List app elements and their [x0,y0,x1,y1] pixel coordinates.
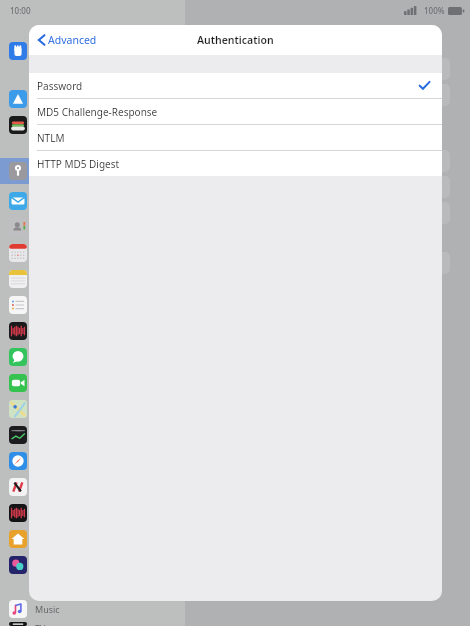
button[interactable] [0,240,185,266]
button[interactable] [205,58,450,80]
button[interactable] [0,266,185,292]
button[interactable] [0,214,185,240]
button[interactable] [0,526,185,552]
button[interactable] [0,396,185,422]
other: Selected [419,81,430,90]
button[interactable] [0,86,185,112]
button[interactable] [0,344,185,370]
staticText: NTLM [37,131,65,145]
button[interactable] [0,38,185,64]
button[interactable]: TV [0,622,185,626]
button[interactable] [0,448,185,474]
button[interactable] [0,158,185,184]
button[interactable] [205,176,450,198]
button[interactable]: HTTP MD5 Digest [29,151,442,176]
staticText: Advanced [48,33,97,47]
button[interactable] [0,422,185,448]
staticText: Music [35,603,60,615]
staticText: HTTP MD5 Digest [37,157,120,171]
button[interactable] [205,84,450,106]
button[interactable]: MD5 Challenge-Response [29,99,442,125]
button[interactable] [0,474,185,500]
staticText: Password [37,79,83,93]
button[interactable]: Music [0,596,185,622]
button[interactable]: Password [29,73,442,99]
button[interactable] [0,500,185,526]
staticText: TV [35,622,46,626]
button[interactable] [0,552,185,578]
button[interactable] [205,252,450,274]
staticText: Authentication [197,33,274,47]
staticText: MD5 Challenge-Response [37,105,158,119]
button[interactable] [0,112,185,138]
button[interactable] [0,292,185,318]
staticText: 10:00 [10,5,31,16]
button[interactable] [0,370,185,396]
button[interactable] [0,188,185,214]
button[interactable] [205,202,450,224]
button[interactable] [205,150,450,172]
button[interactable] [0,318,185,344]
button[interactable]: Advanced [35,30,100,50]
button[interactable]: NTLM [29,125,442,151]
staticText: 100% [424,5,445,16]
